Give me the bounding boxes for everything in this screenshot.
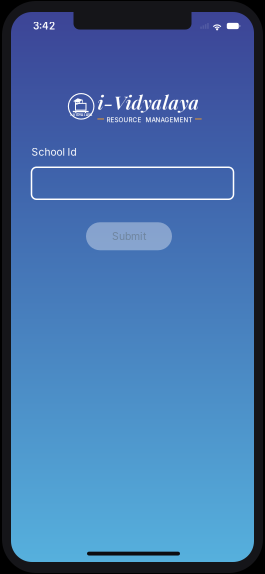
staticText: Submit	[112, 230, 146, 243]
staticText: 3:42	[33, 20, 55, 32]
staticText: i-Vidyalaya	[97, 89, 199, 115]
button[interactable]: Submit	[86, 222, 172, 250]
staticText: School Id	[31, 146, 76, 158]
button[interactable]: School Id text field	[31, 167, 233, 199]
staticText: i-VIDYALAYA	[70, 113, 93, 117]
staticText: RESOURCE MANAGEMENT	[106, 116, 192, 124]
